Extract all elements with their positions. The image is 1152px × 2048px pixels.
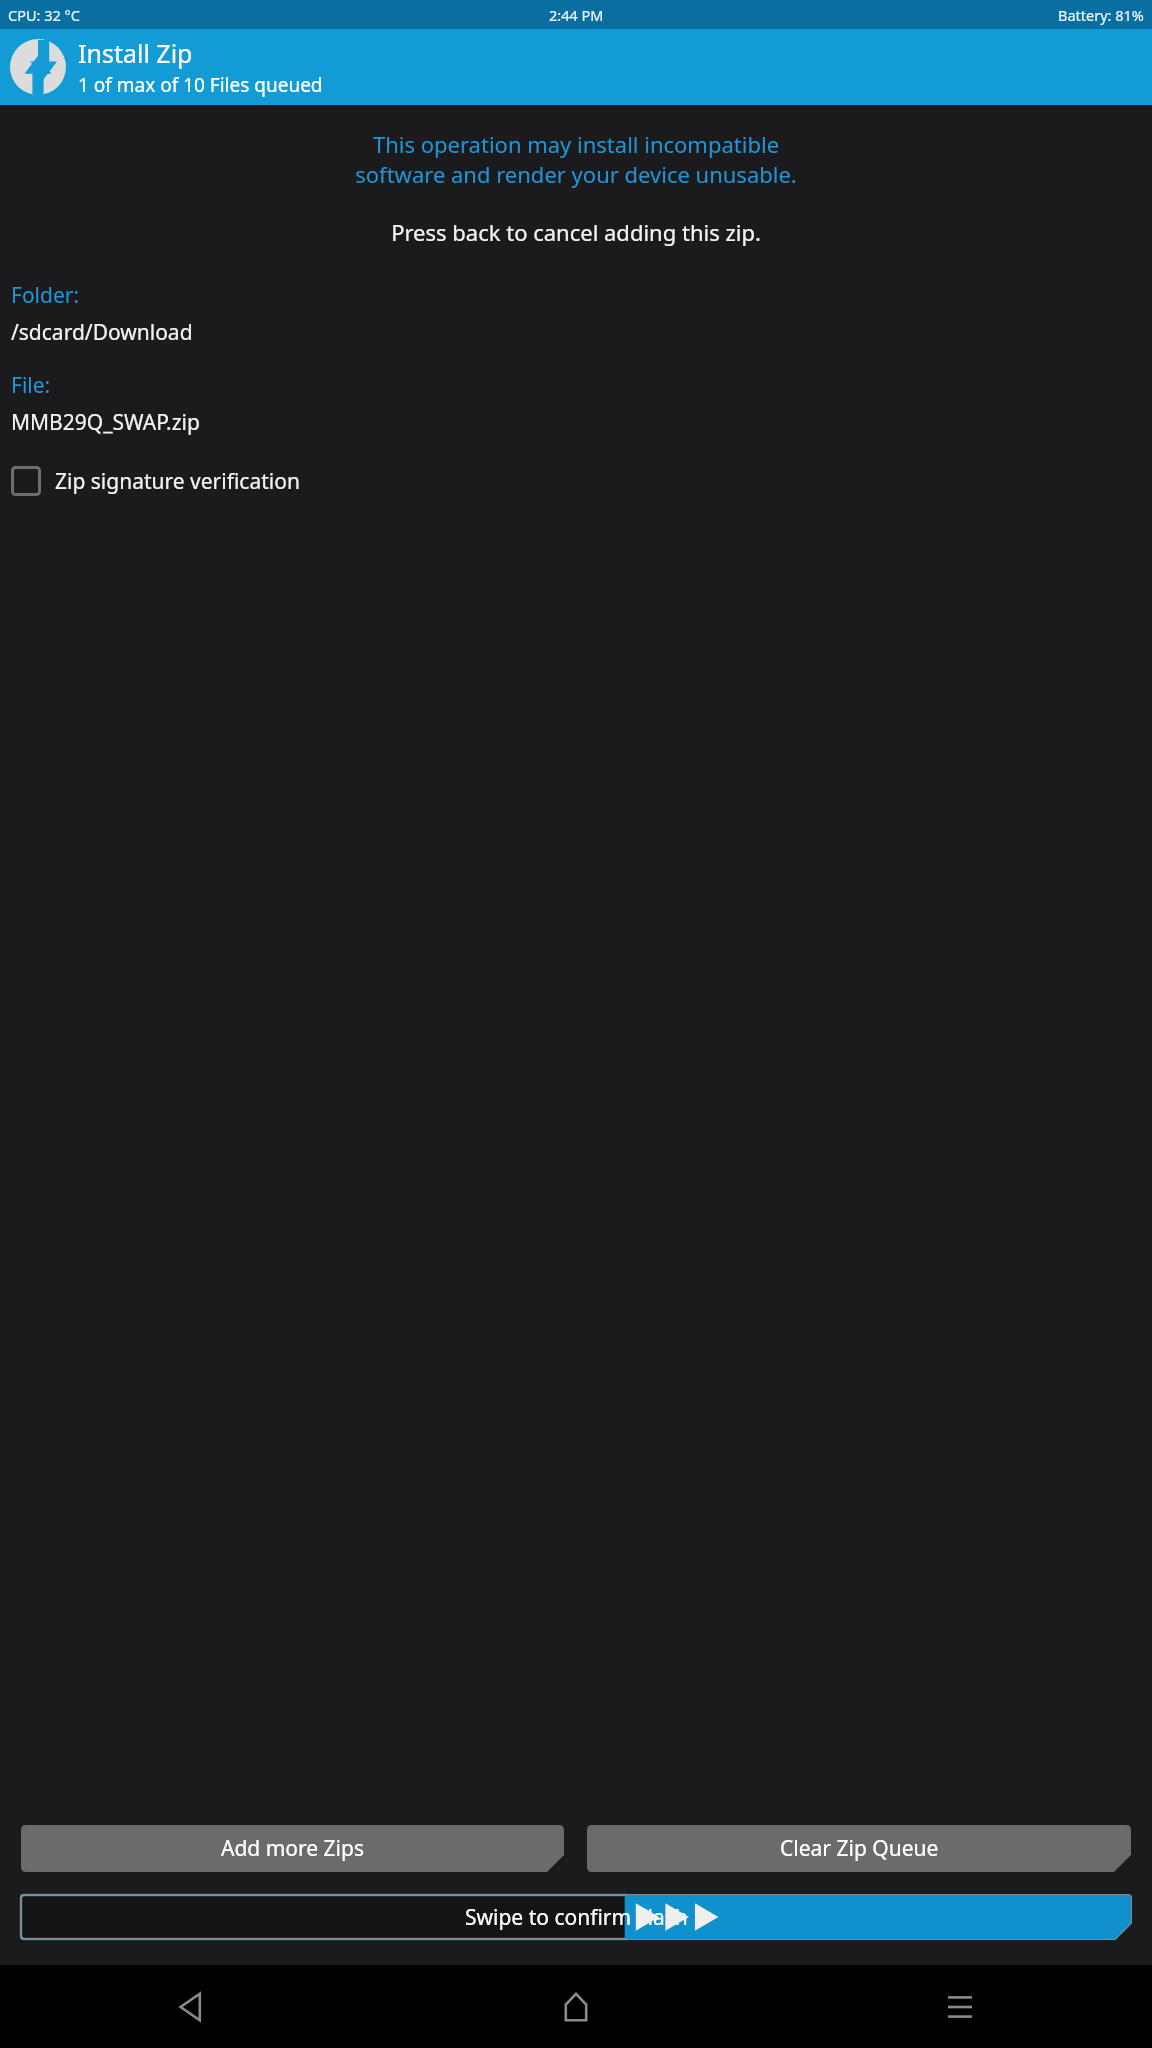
staticText: Clear Zip Queue [780,1834,939,1863]
staticText: File: [11,371,51,400]
staticText: Zip signature verification [55,467,300,496]
staticText: This operation may install incompatible … [0,129,1152,189]
button[interactable]: Add more Zips [21,1825,564,1872]
staticText: Install Zip [78,36,193,70]
button[interactable]: Menu [768,1965,1152,2048]
staticText: Swipe to confirm Flash [465,1903,688,1932]
staticText: 1 of max of 10 Files queued [78,72,323,98]
staticText: Press back to cancel adding this zip. [0,217,1152,247]
staticText: Folder: [11,281,80,310]
staticText: Add more Zips [221,1834,365,1863]
staticText: 2:44 PM [549,5,604,25]
staticText: /sdcard/Download [11,318,193,347]
button[interactable]: Home [384,1965,768,2048]
button[interactable]: Swipe to confirm flash [21,1895,1131,1939]
button[interactable]: Zip signature verification [0,461,1152,501]
staticText: Battery: 81% [1058,5,1144,25]
button[interactable]: Back [0,1965,384,2048]
staticText: MMB29Q_SWAP.zip [11,408,200,437]
staticText: CPU: 32 °C [8,5,80,25]
button[interactable]: Clear Zip Queue [587,1825,1131,1872]
